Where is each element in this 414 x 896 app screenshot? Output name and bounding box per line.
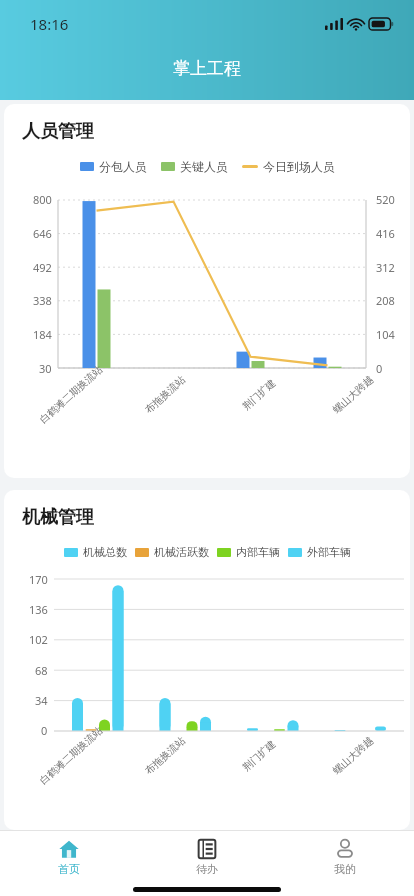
staticText: 30 xyxy=(39,361,52,376)
staticText: 184 xyxy=(33,327,52,342)
staticText: 荆门扩建 xyxy=(240,737,278,774)
staticText: 312 xyxy=(376,260,395,275)
staticText: 34 xyxy=(35,693,48,708)
staticText: 螺山大跨越 xyxy=(330,373,376,416)
staticText: 0 xyxy=(41,723,48,738)
button[interactable]: 人员管理 xyxy=(4,104,410,478)
staticText: 机械活跃数 xyxy=(154,545,209,559)
staticText: 螺山大跨越 xyxy=(330,734,376,777)
staticText: 208 xyxy=(376,293,395,308)
staticText: 646 xyxy=(33,226,52,241)
staticText: 104 xyxy=(376,327,395,342)
staticText: 白鹤滩二期换流站 xyxy=(37,724,105,787)
staticText: 68 xyxy=(35,663,48,678)
staticText: 掌上工程 xyxy=(173,58,241,79)
button[interactable]: 待办 xyxy=(138,831,276,883)
staticText: 布拖换流站 xyxy=(142,734,188,777)
staticText: 内部车辆 xyxy=(236,545,280,559)
staticText: 人员管理 xyxy=(22,120,94,143)
staticText: 520 xyxy=(376,192,395,207)
staticText: 102 xyxy=(29,632,48,647)
staticText: 今日到场人员 xyxy=(263,159,335,174)
staticText: 416 xyxy=(376,226,395,241)
staticText: 待办 xyxy=(196,862,218,876)
staticText: 0 xyxy=(376,361,383,376)
staticText: 136 xyxy=(29,602,48,617)
staticText: 492 xyxy=(33,260,52,275)
button[interactable]: 机械管理 xyxy=(4,490,410,830)
staticText: 关键人员 xyxy=(180,159,228,174)
staticText: 首页 xyxy=(58,862,80,876)
staticText: 外部车辆 xyxy=(307,545,351,559)
staticText: 机械总数 xyxy=(83,545,127,559)
button[interactable]: 我的 xyxy=(276,831,414,883)
staticText: 18:16 xyxy=(30,14,69,34)
staticText: 338 xyxy=(33,293,52,308)
staticText: 荆门扩建 xyxy=(240,376,278,413)
staticText: 白鹤滩二期换流站 xyxy=(37,363,105,426)
staticText: 分包人员 xyxy=(99,159,147,174)
staticText: 170 xyxy=(29,572,48,587)
staticText: 800 xyxy=(33,192,52,207)
staticText: 布拖换流站 xyxy=(142,373,188,416)
staticText: 我的 xyxy=(334,862,356,876)
button[interactable]: 首页 xyxy=(0,831,138,883)
staticText: 机械管理 xyxy=(22,506,94,529)
